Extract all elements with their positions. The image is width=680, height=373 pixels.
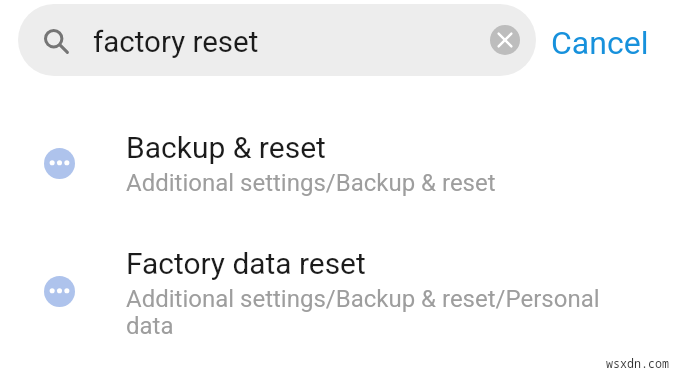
- staticText: Additional settings/Backup & reset: [126, 169, 496, 197]
- staticText: Cancel: [551, 24, 649, 62]
- staticText: Factory data reset: [126, 246, 366, 281]
- button[interactable]: Clear search: [490, 25, 520, 55]
- button[interactable]: Cancel: [543, 12, 655, 68]
- button[interactable]: Backup & reset: [0, 124, 680, 224]
- staticText: wsxdn.com: [606, 355, 670, 371]
- button[interactable]: Factory data reset: [0, 240, 680, 350]
- staticText: Backup & reset: [126, 130, 326, 165]
- button[interactable]: factory reset: [18, 4, 536, 76]
- staticText: Additional settings/Backup & reset/Perso…: [126, 285, 616, 340]
- staticText: factory reset: [93, 25, 259, 60]
